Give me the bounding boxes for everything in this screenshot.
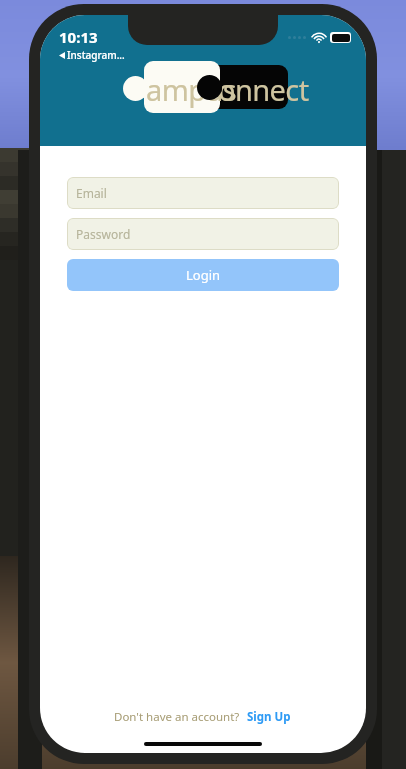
staticText: onnect: [218, 70, 309, 109]
staticText: Email: [76, 185, 107, 201]
staticText: Login: [186, 266, 221, 284]
staticText: Password: [76, 226, 131, 242]
button[interactable]: Email: [67, 177, 339, 209]
staticText: Sign Up: [247, 709, 291, 725]
staticText: ampus: [146, 70, 237, 109]
button[interactable]: Password: [67, 218, 339, 250]
staticText: 10:13: [59, 27, 98, 47]
button[interactable]: Sign Up: [245, 707, 293, 727]
other: Home indicator: [144, 742, 262, 746]
staticText: Instagram...: [67, 48, 125, 62]
staticText: Don't have an account?: [114, 709, 240, 725]
button[interactable]: Login: [67, 259, 339, 291]
